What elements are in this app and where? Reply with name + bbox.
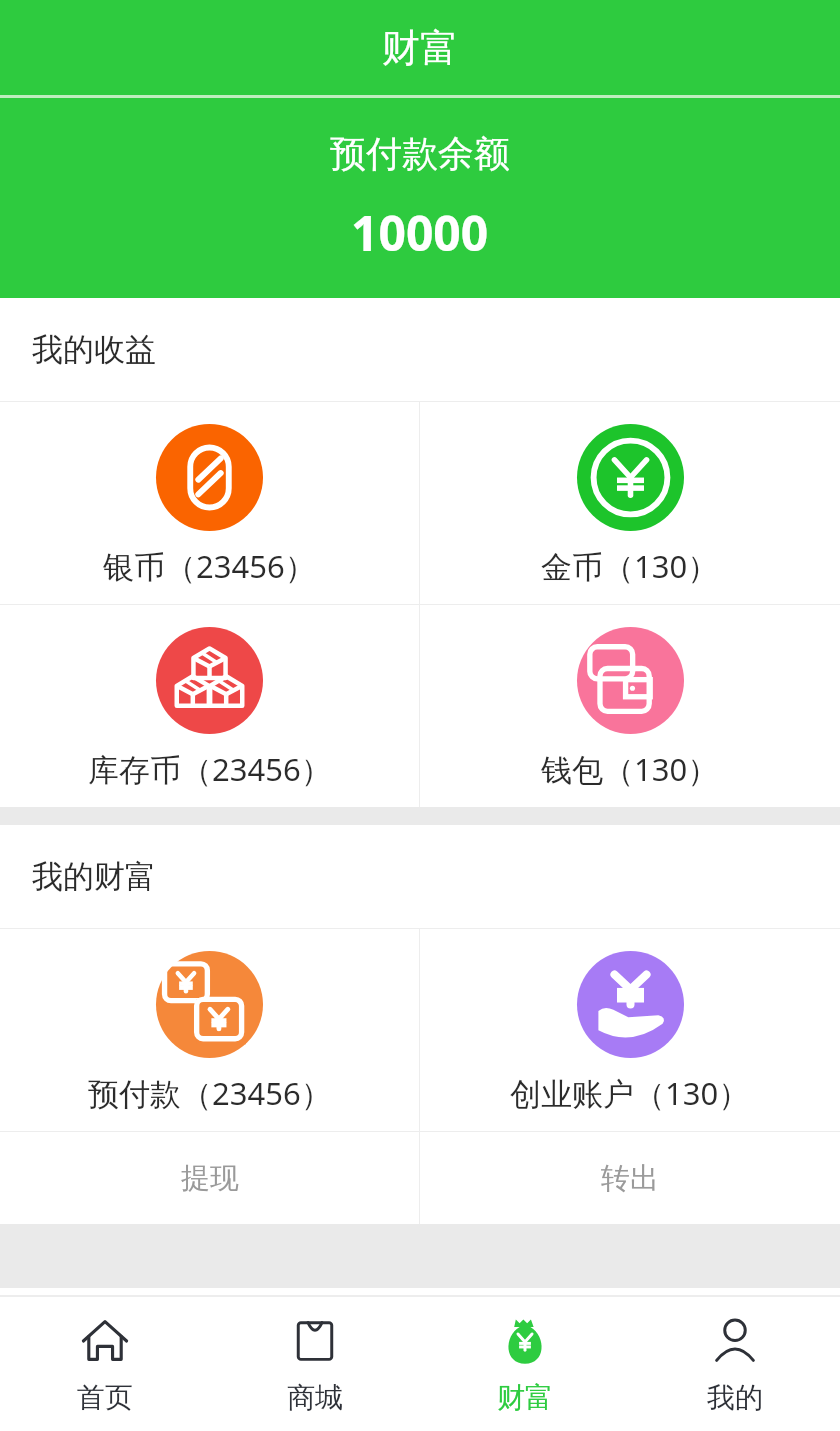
button[interactable]: Inventory coin (0, 605, 419, 807)
staticText: 财富 (497, 1380, 553, 1415)
other: 财富 (498, 1314, 552, 1368)
staticText: 预付款（23456） (88, 1072, 332, 1114)
other: Silver coin (156, 424, 263, 531)
button[interactable]: Silver coin (0, 402, 419, 604)
staticText: 转出 (601, 1160, 659, 1197)
staticText: 10000 (351, 200, 489, 265)
staticText: 库存币（23456） (88, 748, 332, 790)
other: Gold coin (577, 424, 684, 531)
staticText: 金币（130） (541, 545, 719, 587)
button[interactable]: Startup account (420, 929, 840, 1131)
other: 我的 (708, 1314, 762, 1368)
button[interactable]: 我的 (630, 1297, 840, 1431)
staticText: 预付款余额 (330, 131, 510, 176)
other: Startup account (577, 951, 684, 1058)
staticText: 商城 (287, 1380, 343, 1415)
other: Inventory coin (156, 627, 263, 734)
staticText: 我的 (707, 1380, 763, 1415)
other: Wallet (577, 627, 684, 734)
staticText: 创业账户（130） (510, 1072, 750, 1114)
staticText: 我的财富 (32, 857, 156, 896)
button[interactable]: Wallet (420, 605, 840, 807)
other: 商城 (288, 1314, 342, 1368)
other: Prepaid (156, 951, 263, 1058)
staticText: 钱包（130） (541, 748, 719, 790)
staticText: 我的收益 (32, 330, 156, 369)
button[interactable]: 首页 (0, 1297, 210, 1431)
button[interactable]: 财富 (420, 1297, 630, 1431)
button[interactable]: 提现 (0, 1132, 419, 1224)
other: 首页 (78, 1314, 132, 1368)
button[interactable]: Gold coin (420, 402, 840, 604)
button[interactable]: 转出 (420, 1132, 840, 1224)
button[interactable]: Prepaid (0, 929, 419, 1131)
button[interactable]: 商城 (210, 1297, 420, 1431)
staticText: 财富 (382, 24, 458, 72)
staticText: 首页 (77, 1380, 133, 1415)
staticText: 银币（23456） (103, 545, 316, 587)
staticText: 提现 (181, 1160, 239, 1197)
